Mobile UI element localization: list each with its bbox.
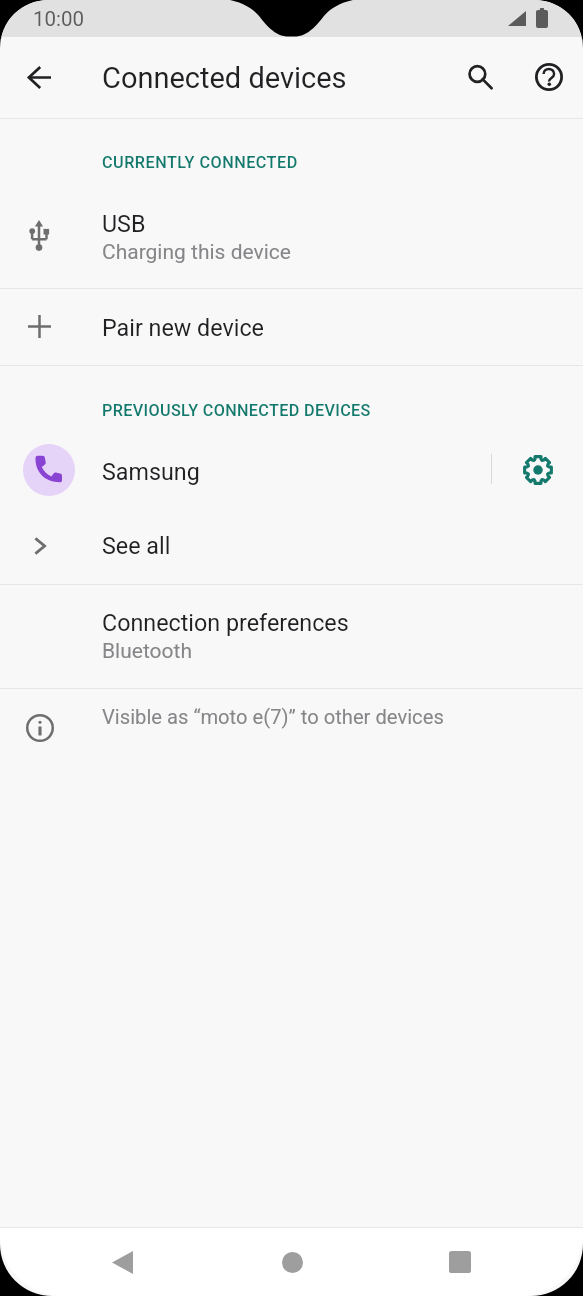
staticText: Connection preferences — [102, 609, 349, 636]
button[interactable]: Recent apps — [404, 1228, 516, 1296]
staticText: USB — [102, 210, 146, 237]
staticText: 10:00 — [33, 7, 85, 31]
button[interactable] — [0, 119, 583, 289]
button[interactable] — [0, 432, 490, 509]
button[interactable] — [0, 510, 583, 584]
button[interactable]: Help — [524, 53, 573, 102]
staticText: Connected devices — [102, 61, 347, 95]
button[interactable]: Back — [66, 1228, 178, 1296]
button[interactable]: Search — [453, 50, 502, 99]
button[interactable] — [0, 289, 583, 365]
staticText: Visible as “moto e(7)” to other devices — [102, 705, 444, 729]
staticText: PREVIOUSLY CONNECTED DEVICES — [102, 401, 371, 420]
button[interactable]: Navigate up — [15, 53, 64, 102]
staticText: Pair new device — [102, 314, 264, 341]
staticText: Charging this device — [102, 240, 291, 265]
button[interactable]: Samsung device settings — [496, 432, 580, 509]
button[interactable] — [0, 689, 583, 767]
staticText: Samsung — [102, 458, 200, 485]
button[interactable]: Home — [236, 1228, 348, 1296]
staticText: CURRENTLY CONNECTED — [102, 153, 298, 172]
staticText: See all — [102, 532, 171, 559]
staticText: Bluetooth — [102, 639, 192, 664]
button[interactable] — [0, 585, 583, 688]
